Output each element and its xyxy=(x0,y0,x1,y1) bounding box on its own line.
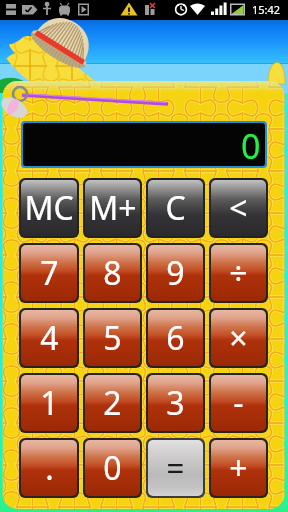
button[interactable]: 6 xyxy=(148,310,203,366)
staticText: 4 xyxy=(40,316,59,360)
staticText: 8 xyxy=(103,251,122,295)
button[interactable]: ÷ xyxy=(211,245,266,301)
button[interactable]: MC xyxy=(21,180,77,236)
button[interactable]: 1 xyxy=(21,375,77,431)
staticText: × xyxy=(229,316,248,360)
staticText: - xyxy=(233,381,244,425)
button[interactable]: 5 xyxy=(85,310,140,366)
staticText: ÷ xyxy=(229,251,248,295)
staticText: 9 xyxy=(166,251,185,295)
button[interactable]: + xyxy=(211,440,266,496)
staticText: 2 xyxy=(103,381,122,425)
button[interactable]: 9 xyxy=(148,245,203,301)
staticText: 0 xyxy=(103,446,122,490)
button[interactable]: 7 xyxy=(21,245,77,301)
button[interactable]: 4 xyxy=(21,310,77,366)
staticText: 7 xyxy=(40,251,59,295)
staticText: = xyxy=(166,446,185,490)
staticText: 15:42 xyxy=(252,2,281,17)
button[interactable]: 2 xyxy=(85,375,140,431)
button[interactable]: 3 xyxy=(148,375,203,431)
button[interactable]: 8 xyxy=(85,245,140,301)
button[interactable]: . xyxy=(21,440,77,496)
button[interactable]: 0 xyxy=(23,123,265,166)
staticText: 6 xyxy=(166,316,185,360)
staticText: 0 xyxy=(241,123,261,164)
staticText: + xyxy=(229,446,248,490)
staticText: < xyxy=(229,186,248,230)
staticText: . xyxy=(45,446,54,490)
button[interactable]: = xyxy=(148,440,203,496)
staticText: M+ xyxy=(89,186,137,230)
staticText: 3 xyxy=(166,381,185,425)
button[interactable]: < xyxy=(211,180,266,236)
staticText: 5 xyxy=(103,316,122,360)
button[interactable]: - xyxy=(211,375,266,431)
button[interactable]: M+ xyxy=(85,180,140,236)
button[interactable]: C xyxy=(148,180,203,236)
button[interactable]: 0 xyxy=(85,440,140,496)
button[interactable]: × xyxy=(211,310,266,366)
staticText: C xyxy=(165,186,186,230)
staticText: MC xyxy=(24,186,74,230)
staticText: 1 xyxy=(40,381,59,425)
